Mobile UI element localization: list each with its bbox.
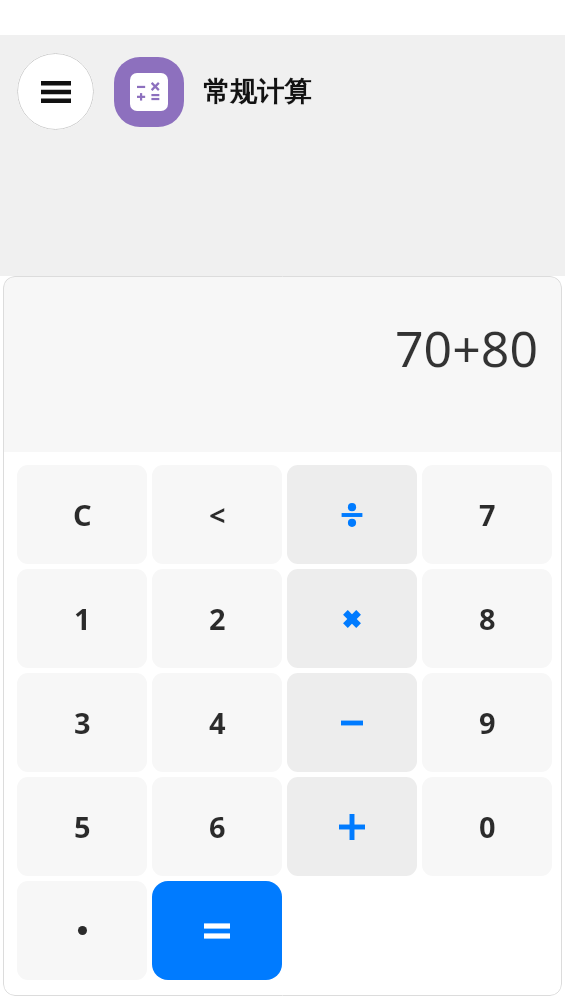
staticText: 8 <box>479 599 496 638</box>
staticText: 2 <box>209 599 226 638</box>
button[interactable] <box>287 569 417 668</box>
button[interactable] <box>152 881 282 980</box>
button[interactable]: 1 <box>17 569 147 668</box>
button[interactable]: 2 <box>152 569 282 668</box>
button[interactable]: 0 <box>422 777 552 876</box>
staticText: 70+80 <box>3 314 538 382</box>
staticText: 5 <box>74 807 91 846</box>
button[interactable]: 7 <box>422 465 552 564</box>
staticText: 常规计算 <box>203 75 311 109</box>
staticText: C <box>73 495 92 534</box>
staticText: 7 <box>479 495 496 534</box>
button[interactable]: 3 <box>17 673 147 772</box>
button[interactable]: 8 <box>422 569 552 668</box>
button[interactable]: C <box>17 465 147 564</box>
button[interactable] <box>287 673 417 772</box>
staticText: 4 <box>209 703 226 742</box>
button[interactable]: 6 <box>152 777 282 876</box>
staticText: 1 <box>74 599 91 638</box>
button[interactable]: Menu <box>17 53 94 130</box>
staticText: 6 <box>209 807 226 846</box>
staticText: 0 <box>479 807 496 846</box>
button[interactable] <box>17 881 147 980</box>
staticText: < <box>209 495 226 534</box>
button[interactable] <box>287 465 417 564</box>
staticText: 9 <box>479 703 496 742</box>
button[interactable]: 9 <box>422 673 552 772</box>
button[interactable]: < <box>152 465 282 564</box>
button[interactable]: 5 <box>17 777 147 876</box>
button[interactable]: 4 <box>152 673 282 772</box>
staticText: 3 <box>74 703 91 742</box>
button[interactable] <box>287 777 417 876</box>
